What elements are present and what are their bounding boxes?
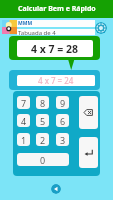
staticText: 2 xyxy=(40,134,46,146)
staticText: 8 xyxy=(40,97,46,109)
staticText: 0 xyxy=(40,154,46,166)
button[interactable]: 7 xyxy=(17,96,30,109)
button[interactable]: 8 xyxy=(36,96,49,109)
button[interactable]: Back xyxy=(51,184,61,194)
button[interactable]: 5 xyxy=(36,114,49,127)
button[interactable]: 1 xyxy=(17,133,30,146)
staticText: Calcular Bem e Rápido xyxy=(18,4,96,14)
staticText: 4 xyxy=(21,115,27,127)
button[interactable]: 2 xyxy=(36,133,49,146)
button[interactable]: Tabuada de 4 xyxy=(17,29,95,35)
button[interactable]: Enter xyxy=(79,137,98,168)
staticText: 6 xyxy=(60,115,66,127)
staticText: 4 x 7 = 24 xyxy=(38,75,74,86)
button[interactable]: MMM xyxy=(17,20,95,27)
button[interactable]: 9 xyxy=(56,96,69,109)
button[interactable]: 0 xyxy=(17,153,69,166)
staticText: 4 x 7 = 28 xyxy=(31,42,79,56)
button[interactable]: 3 xyxy=(56,133,69,146)
staticText: 1 xyxy=(21,134,27,146)
staticText: 9 xyxy=(60,97,66,109)
button[interactable]: Backspace xyxy=(79,96,98,129)
staticText: Tabuada de 4 xyxy=(18,29,56,35)
button[interactable]: Settings xyxy=(95,22,107,34)
staticText: 7 xyxy=(21,97,27,109)
button[interactable]: 6 xyxy=(56,114,69,127)
staticText: MMM xyxy=(18,20,33,27)
button[interactable]: 4 xyxy=(17,114,30,127)
staticText: 3 xyxy=(60,134,66,146)
staticText: 5 xyxy=(40,115,46,127)
